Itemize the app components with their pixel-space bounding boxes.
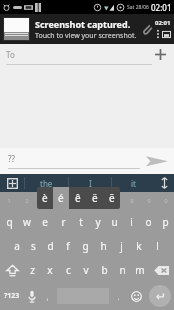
staticText: ê: [75, 191, 81, 205]
button[interactable]: Enter: [149, 285, 171, 307]
button[interactable]: r: [54, 210, 72, 234]
button[interactable]: ??: [8, 148, 140, 174]
button[interactable]: x: [41, 258, 59, 282]
button[interactable]: ,: [40, 282, 55, 310]
button[interactable]: 7: [106, 192, 123, 210]
staticText: ë: [92, 191, 98, 205]
button[interactable]: f: [59, 234, 76, 258]
button[interactable]: Send: [140, 148, 174, 174]
staticText: e: [42, 215, 48, 229]
staticText: .: [117, 291, 120, 302]
button[interactable]: 4: [54, 192, 72, 210]
staticText: I: [89, 178, 92, 189]
button[interactable]: a: [8, 234, 25, 258]
staticText: ??: [8, 153, 15, 164]
other: Attachment: [141, 23, 153, 35]
button[interactable]: e: [36, 210, 54, 234]
button[interactable]: p: [157, 210, 174, 234]
button[interactable]: j: [112, 234, 130, 258]
button[interactable]: ē: [103, 187, 120, 209]
button[interactable]: 3: [36, 192, 54, 210]
staticText: l: [156, 239, 159, 253]
staticText: v: [83, 263, 89, 277]
button[interactable]: i: [123, 210, 140, 234]
staticText: ē: [109, 191, 115, 205]
staticText: 7: [113, 197, 117, 205]
button[interactable]: d: [42, 234, 59, 258]
button[interactable]: z: [24, 258, 41, 282]
button[interactable]: k: [130, 234, 148, 258]
button[interactable]: s: [25, 234, 42, 258]
staticText: 1: [7, 197, 11, 205]
staticText: ?123: [4, 291, 20, 301]
staticText: a: [14, 239, 20, 253]
button[interactable]: Screenshot captured.: [0, 14, 174, 44]
button[interactable]: u: [106, 210, 123, 234]
staticText: d: [47, 239, 54, 253]
button[interactable]: é: [53, 187, 69, 209]
button[interactable]: To: [6, 44, 152, 64]
button[interactable]: c: [59, 258, 77, 282]
button[interactable]: n: [113, 258, 131, 282]
button[interactable]: Shift: [0, 258, 24, 282]
button[interactable]: o: [140, 210, 157, 234]
button[interactable]: Keyboard settings: [0, 174, 24, 192]
other: Expand notification: [162, 30, 171, 39]
staticText: y: [95, 215, 101, 229]
button[interactable]: l: [148, 234, 166, 258]
button[interactable]: 5: [72, 192, 89, 210]
button[interactable]: Add recipient: [152, 46, 168, 62]
button[interactable]: v: [77, 258, 95, 282]
button[interactable]: 8: [123, 192, 140, 210]
staticText: t: [79, 215, 83, 229]
button[interactable]: ?123: [0, 282, 24, 310]
button[interactable]: g: [76, 234, 94, 258]
staticText: Touch to view your screenshot.: [35, 31, 137, 41]
staticText: g: [82, 239, 89, 253]
other: More options: [156, 29, 160, 39]
staticText: 0: [164, 197, 168, 205]
button[interactable]: q: [0, 210, 18, 234]
button[interactable]: Emoji: [126, 282, 146, 310]
button[interactable]: ê: [69, 187, 86, 209]
button[interactable]: ë: [86, 187, 103, 209]
staticText: Sat 28/06: [127, 4, 149, 11]
button[interactable]: More suggestions: [154, 174, 174, 192]
button[interactable]: t: [72, 210, 89, 234]
staticText: è: [42, 191, 48, 205]
staticText: the: [40, 178, 53, 189]
button[interactable]: I: [69, 174, 111, 192]
button[interactable]: è: [37, 187, 53, 209]
staticText: o: [145, 215, 152, 229]
button[interactable]: h: [94, 234, 112, 258]
button[interactable]: m: [131, 258, 149, 282]
button[interactable]: the: [25, 174, 68, 192]
staticText: x: [47, 263, 53, 277]
button[interactable]: b: [95, 258, 113, 282]
staticText: p: [162, 215, 169, 229]
button[interactable]: 6: [89, 192, 106, 210]
staticText: r: [61, 215, 66, 229]
staticText: j: [120, 239, 123, 253]
staticText: 02:01: [151, 2, 172, 13]
staticText: 6: [96, 197, 100, 205]
button[interactable]: Voice input: [24, 282, 40, 310]
staticText: 9: [147, 197, 151, 205]
staticText: w: [23, 215, 31, 229]
staticText: s: [31, 239, 36, 253]
button[interactable]: w: [18, 210, 36, 234]
button[interactable]: it: [112, 174, 154, 192]
button[interactable]: y: [89, 210, 106, 234]
staticText: q: [6, 215, 13, 229]
staticText: h: [100, 239, 107, 253]
staticText: u: [111, 215, 118, 229]
staticText: 5: [79, 197, 83, 205]
button[interactable]: Delete: [149, 258, 174, 282]
staticText: n: [119, 263, 126, 277]
